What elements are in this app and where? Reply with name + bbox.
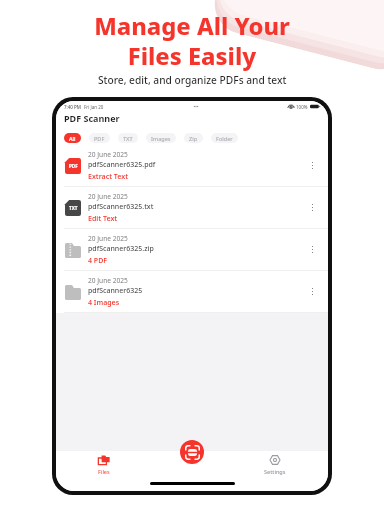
button[interactable]: TXT [56,187,328,228]
button[interactable]: Images [146,133,176,143]
staticText: Settings [264,468,286,475]
button[interactable]: PDF [56,145,328,186]
staticText: Edit Text [88,214,118,224]
button[interactable]: More options [307,244,318,255]
staticText: 100% [296,104,308,110]
staticText: Extract Text [88,172,129,182]
staticText: Zip [189,135,198,142]
staticText: 20 June 2025 [88,276,128,285]
staticText: All [69,135,76,142]
staticText: 4 Images [88,298,120,308]
staticText: Store, edit, and organize PDFs and text [98,73,287,87]
button[interactable]: More options [307,160,318,171]
staticText: PDF [94,135,105,142]
button[interactable]: More options [307,202,318,213]
button[interactable]: 20 June 2025 [56,229,328,270]
staticText: Folder [216,135,233,142]
staticText: Images [151,135,171,142]
button[interactable]: All [64,133,81,143]
staticText: TXT [123,135,133,142]
button[interactable]: Scan document [180,440,204,464]
button[interactable]: TXT [118,133,138,143]
button[interactable]: Files [98,455,110,475]
staticText: Fri Jan 20 [84,104,104,110]
button[interactable]: PDF [89,133,110,143]
staticText: 20 June 2025 [88,192,128,201]
staticText: pdfScanner6325.pdf [88,160,156,170]
staticText: 7:40 PM [64,104,81,110]
staticText: 4 PDF [88,256,108,266]
staticText: pdfScanner6325.txt [88,202,154,212]
staticText: 20 June 2025 [88,234,128,243]
staticText: pdfScanner6325.zip [88,244,154,254]
staticText: TXT [69,205,78,211]
button[interactable]: More options [307,286,318,297]
button[interactable]: Folder [211,133,238,143]
staticText: Files [98,468,110,475]
staticText: PDF Scanner [64,112,120,124]
button[interactable]: 20 June 2025 [56,271,328,312]
staticText: pdfScanner6325 [88,286,143,296]
button[interactable]: Zip [184,133,203,143]
button[interactable]: Settings [264,455,286,475]
staticText: 20 June 2025 [88,150,128,159]
staticText: Manage All Your Files Easily [94,10,290,72]
staticText: PDF [69,163,78,169]
